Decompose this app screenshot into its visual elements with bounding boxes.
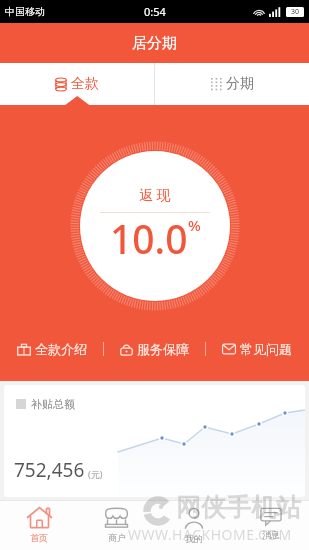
staticText: 中国移动	[5, 5, 45, 18]
staticText: 首页	[30, 532, 48, 543]
button[interactable]: 常见问题	[220, 341, 294, 357]
staticText: 补贴总额	[31, 397, 75, 411]
button[interactable]: Messages	[232, 501, 309, 550]
other: Messages	[259, 506, 283, 526]
button[interactable]: 分期	[155, 63, 309, 105]
staticText: 消息	[262, 529, 280, 540]
button[interactable]: Merchants	[78, 501, 155, 550]
staticText: 全款	[71, 75, 99, 93]
staticText: 我的	[185, 533, 203, 544]
staticText: 分期	[226, 75, 254, 93]
staticText: 服务保障	[137, 341, 189, 357]
staticText: 752,456	[14, 457, 85, 483]
other: Merchants	[104, 506, 129, 529]
staticText: %	[188, 215, 201, 235]
button[interactable]: 全款介绍	[15, 341, 89, 357]
button[interactable]: Home	[0, 501, 78, 550]
button[interactable]: Profile	[155, 501, 232, 550]
staticText: 网侠手机站	[176, 492, 301, 523]
other: Home	[27, 506, 52, 529]
staticText: WWW.HACKHOME.COM	[128, 525, 292, 544]
staticText: 0:54	[144, 4, 166, 19]
staticText: 居分期	[132, 34, 177, 53]
staticText: 30	[291, 7, 300, 17]
other: Profile	[182, 506, 206, 530]
staticText: 10.0	[110, 212, 188, 265]
staticText: 全款介绍	[35, 341, 87, 357]
staticText: (元)	[88, 468, 103, 480]
staticText: 商户	[108, 532, 126, 543]
button[interactable]: 服务保障	[118, 341, 191, 357]
button[interactable]: 全款	[0, 63, 154, 105]
staticText: 常见问题	[240, 341, 292, 357]
staticText: 返 现	[139, 185, 171, 204]
